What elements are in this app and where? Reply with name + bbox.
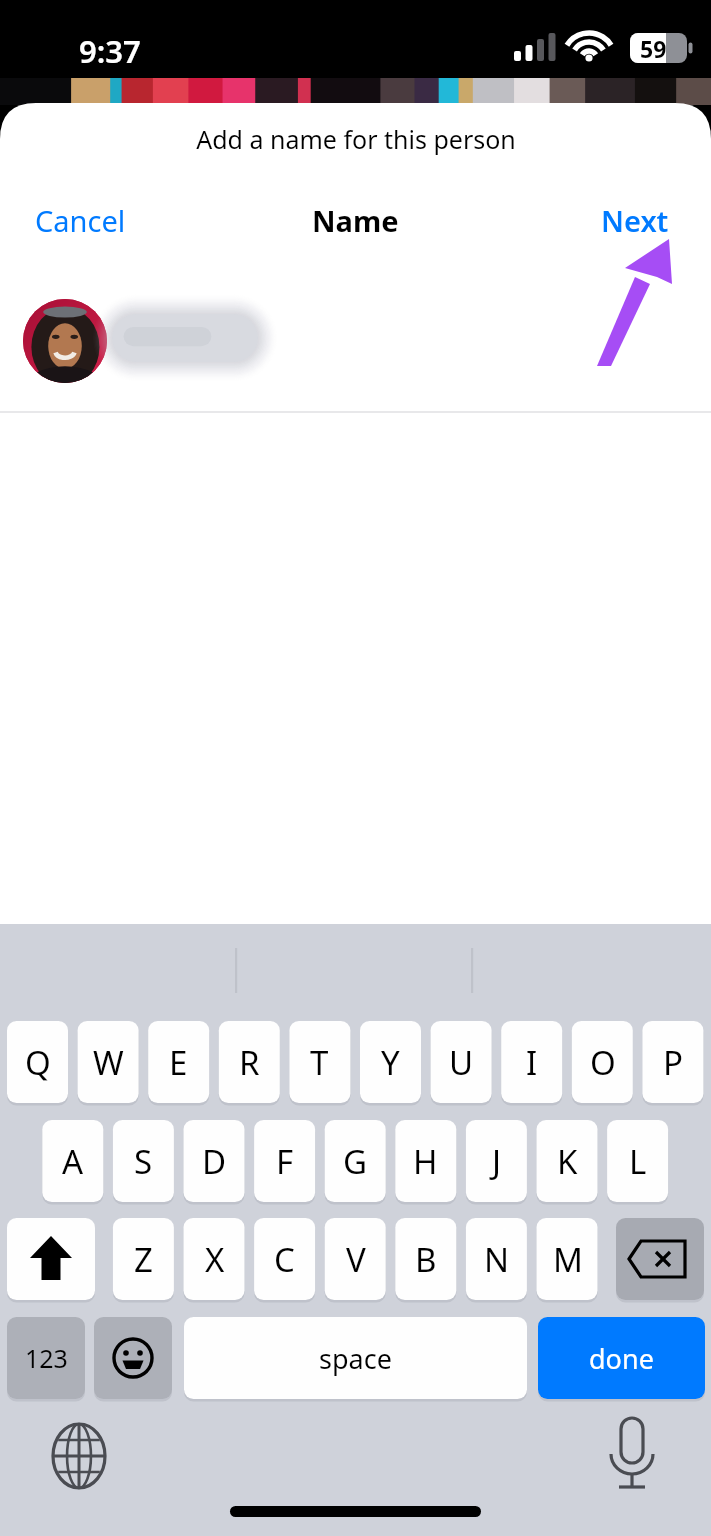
staticText: Q bbox=[25, 1040, 51, 1085]
staticText: Name bbox=[312, 201, 399, 240]
button[interactable]: Q bbox=[7, 1021, 68, 1103]
button[interactable]: O bbox=[572, 1021, 633, 1103]
staticText: V bbox=[346, 1237, 366, 1282]
button[interactable]: J bbox=[466, 1120, 527, 1202]
staticText: Z bbox=[134, 1237, 153, 1282]
button[interactable]: K bbox=[537, 1120, 598, 1202]
button[interactable]: V bbox=[325, 1218, 386, 1300]
button[interactable]: T bbox=[289, 1021, 350, 1103]
button[interactable]: space bbox=[184, 1317, 527, 1399]
button[interactable]: G bbox=[325, 1120, 386, 1202]
button[interactable]: P bbox=[642, 1021, 703, 1103]
staticText: 9:37 bbox=[79, 30, 141, 72]
button[interactable]: D bbox=[184, 1120, 245, 1202]
staticText: J bbox=[492, 1139, 502, 1184]
button[interactable]: B bbox=[395, 1218, 456, 1300]
button[interactable]: F bbox=[254, 1120, 315, 1202]
staticText: W bbox=[93, 1040, 124, 1085]
staticText: S bbox=[134, 1139, 153, 1184]
button[interactable]: L bbox=[607, 1120, 668, 1202]
button[interactable]: U bbox=[431, 1021, 492, 1103]
staticText: B bbox=[415, 1237, 437, 1282]
staticText: F bbox=[276, 1139, 294, 1184]
staticText: C bbox=[274, 1237, 295, 1282]
staticText: 59 bbox=[640, 33, 667, 63]
staticText: 123 bbox=[25, 1341, 68, 1375]
staticText: N bbox=[484, 1237, 510, 1282]
staticText: Y bbox=[381, 1040, 400, 1085]
button[interactable]: M bbox=[537, 1218, 598, 1300]
button[interactable]: N bbox=[466, 1218, 527, 1300]
staticText: D bbox=[202, 1139, 227, 1184]
staticText: L bbox=[629, 1139, 647, 1184]
button[interactable]: Change keyboard bbox=[45, 1422, 113, 1490]
staticText: O bbox=[590, 1040, 616, 1085]
button[interactable]: C bbox=[254, 1218, 315, 1300]
staticText: K bbox=[557, 1139, 578, 1184]
button[interactable]: Cancel bbox=[14, 192, 146, 248]
button[interactable]: W bbox=[78, 1021, 139, 1103]
staticText: U bbox=[449, 1040, 474, 1085]
staticText: H bbox=[413, 1139, 438, 1184]
button[interactable]: Z bbox=[113, 1218, 174, 1300]
staticText: P bbox=[663, 1040, 683, 1085]
button[interactable]: done bbox=[538, 1317, 705, 1399]
button[interactable] bbox=[0, 288, 711, 396]
button[interactable]: A bbox=[42, 1120, 103, 1202]
button[interactable]: Backspace bbox=[616, 1218, 704, 1300]
staticText: Cancel bbox=[35, 201, 126, 240]
button[interactable]: H bbox=[395, 1120, 456, 1202]
button[interactable]: Y bbox=[360, 1021, 421, 1103]
staticText: X bbox=[205, 1237, 225, 1282]
staticText: T bbox=[310, 1040, 329, 1085]
staticText: done bbox=[589, 1340, 654, 1377]
button[interactable]: Shift bbox=[7, 1218, 95, 1300]
button[interactable]: 123 bbox=[7, 1317, 85, 1399]
staticText: E bbox=[169, 1040, 188, 1085]
staticText: space bbox=[319, 1340, 392, 1377]
button[interactable]: Emoji bbox=[94, 1317, 172, 1399]
staticText: Add a name for this person bbox=[196, 122, 516, 156]
staticText: M bbox=[553, 1237, 583, 1282]
button[interactable]: S bbox=[113, 1120, 174, 1202]
staticText: I bbox=[526, 1040, 538, 1085]
button[interactable]: X bbox=[184, 1218, 245, 1300]
staticText: A bbox=[62, 1139, 84, 1184]
button[interactable]: Dictate bbox=[598, 1422, 666, 1490]
button[interactable]: E bbox=[148, 1021, 209, 1103]
button[interactable]: R bbox=[219, 1021, 280, 1103]
button[interactable]: Next bbox=[578, 192, 692, 248]
staticText: G bbox=[343, 1139, 368, 1184]
button[interactable]: I bbox=[501, 1021, 562, 1103]
staticText: R bbox=[239, 1040, 260, 1085]
staticText: Next bbox=[601, 201, 669, 240]
